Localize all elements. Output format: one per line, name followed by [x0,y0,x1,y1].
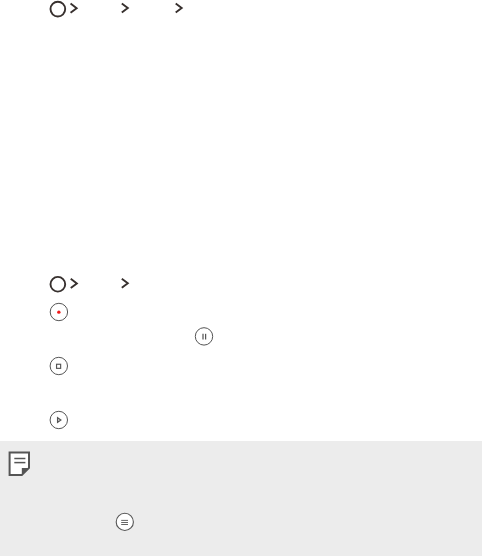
button[interactable]: Stop [46,354,72,380]
button[interactable]: Note [6,449,34,477]
button[interactable]: Section breadcrumb [40,272,150,298]
button[interactable]: Breadcrumb navigation [40,0,200,20]
button[interactable]: Record [46,300,72,326]
button[interactable]: Play [46,408,72,434]
button[interactable]: Menu [112,508,138,534]
button[interactable]: Pause [192,324,218,350]
